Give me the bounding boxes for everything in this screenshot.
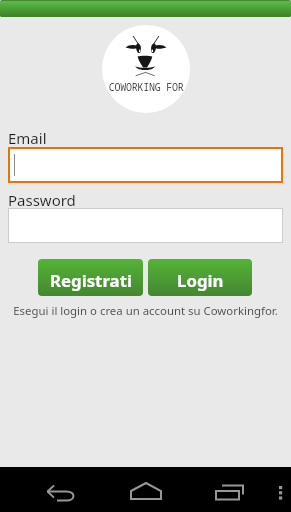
staticText: Registrati: [50, 269, 132, 292]
button[interactable]: Recent apps: [212, 479, 248, 501]
staticText: Password: [8, 190, 76, 210]
button[interactable]: Back: [43, 479, 79, 501]
button[interactable]: Home: [127, 479, 165, 501]
staticText: Registrati: [50, 269, 132, 292]
staticText: Login: [177, 269, 224, 292]
button[interactable]: More options: [271, 479, 291, 501]
button[interactable]: Login: [148, 259, 252, 296]
staticText: COWORKING FOR: [102, 80, 190, 94]
button[interactable]: Registrati: [38, 259, 143, 296]
staticText: Esegui il login o crea un account su Cow…: [0, 303, 291, 319]
staticText: Login: [177, 269, 224, 292]
staticText: Email: [8, 128, 47, 148]
